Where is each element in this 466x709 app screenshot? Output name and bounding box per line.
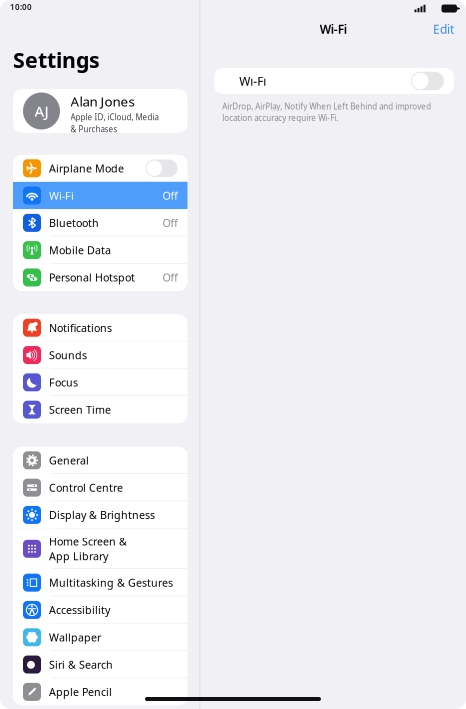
button[interactable]: Screen Time — [13, 396, 187, 423]
staticText: Wi-Fi — [239, 73, 266, 89]
staticText: Focus — [49, 375, 78, 389]
staticText: Edit — [433, 21, 454, 37]
button[interactable]: Control Centre — [13, 474, 187, 501]
staticText: Sounds — [49, 348, 87, 362]
staticText: AirDrop, AirPlay, Notify When Left Behin… — [222, 101, 431, 112]
staticText: 10:00 — [10, 2, 32, 12]
button[interactable]: Multitasking & Gestures — [13, 569, 187, 596]
staticText: Notifications — [49, 321, 112, 335]
staticText: Off — [162, 188, 177, 203]
button[interactable]: Wi-Fi — [13, 182, 187, 209]
staticText: location accuracy require Wi-Fi. — [222, 113, 338, 123]
button[interactable]: Apple Pencil — [13, 678, 187, 705]
staticText: Accessibility — [49, 603, 110, 617]
staticText: Airplane Mode — [49, 161, 124, 175]
staticText: Bluetooth — [49, 216, 99, 230]
button[interactable]: Airplane Mode — [13, 155, 187, 182]
button[interactable]: Mobile Data — [13, 236, 187, 264]
staticText: & Purchases — [70, 124, 117, 134]
button[interactable]: Wallpaper — [13, 624, 187, 651]
staticText: Multitasking & Gestures — [49, 576, 173, 590]
button[interactable]: Bluetooth — [13, 209, 187, 236]
staticText: Alan Jones — [70, 92, 134, 110]
staticText: Screen Time — [49, 403, 111, 417]
staticText: Apple Pencil — [49, 685, 112, 699]
staticText: Settings — [13, 46, 100, 74]
staticText: Wi-Fi — [320, 21, 347, 37]
staticText: Control Centre — [49, 481, 123, 495]
button[interactable]: Accessibility — [13, 596, 187, 624]
button[interactable]: Personal Hotspot — [13, 264, 187, 291]
staticText: Personal Hotspot — [49, 270, 135, 285]
staticText: Wallpaper — [49, 630, 101, 644]
button[interactable]: Focus — [13, 369, 187, 396]
button[interactable]: AJ — [13, 89, 187, 133]
button[interactable]: General — [13, 447, 187, 474]
button[interactable]: Display & Brightness — [13, 501, 187, 529]
staticText: Off — [162, 270, 177, 285]
staticText: Display & Brightness — [49, 508, 155, 522]
staticText: Off — [162, 216, 177, 230]
staticText: General — [49, 453, 89, 467]
staticText: Siri & Search — [49, 657, 113, 672]
button[interactable]: Edit — [427, 17, 460, 41]
button[interactable]: Home Screen & — [13, 529, 187, 569]
button[interactable]: Notifications — [13, 314, 187, 341]
staticText: Apple ID, iCloud, Media — [70, 112, 158, 122]
staticText: Mobile Data — [49, 243, 111, 257]
button[interactable]: Siri & Search — [13, 651, 187, 678]
button[interactable]: Wi-Fi — [214, 68, 454, 94]
staticText: AJ — [34, 101, 48, 121]
button[interactable]: Sounds — [13, 341, 187, 369]
staticText: Wi-Fi — [49, 188, 74, 203]
staticText: Home Screen & — [49, 534, 127, 549]
staticText: App Library — [49, 549, 108, 563]
